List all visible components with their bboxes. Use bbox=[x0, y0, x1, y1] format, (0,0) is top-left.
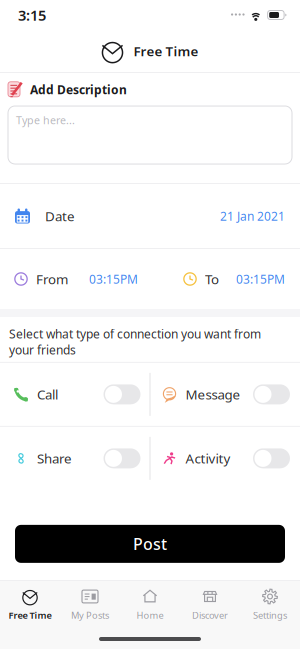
staticText: Free Time bbox=[133, 42, 198, 60]
staticText: My Posts bbox=[71, 609, 109, 621]
staticText: Date bbox=[45, 207, 75, 225]
button[interactable]: Settings bbox=[240, 588, 300, 621]
staticText: Post bbox=[133, 533, 167, 554]
button[interactable]: My Posts bbox=[60, 588, 120, 621]
staticText: To bbox=[205, 270, 219, 288]
staticText: 21 Jan 2021 bbox=[220, 208, 285, 224]
button[interactable]: Activity bbox=[150, 427, 300, 490]
staticText: Activity bbox=[185, 449, 230, 467]
button[interactable]: Call bbox=[0, 363, 149, 426]
staticText: Select what type of connection you want … bbox=[9, 326, 261, 358]
button[interactable]: Home bbox=[120, 588, 180, 621]
button[interactable]: Share bbox=[0, 427, 149, 490]
button[interactable]: From bbox=[0, 249, 150, 309]
staticText: 3:15 bbox=[18, 5, 46, 25]
button[interactable]: Date bbox=[0, 184, 300, 248]
button[interactable]: To bbox=[150, 249, 300, 309]
staticText: 03:15PM bbox=[89, 271, 138, 287]
button[interactable]: Free Time bbox=[0, 588, 60, 621]
staticText: Discover bbox=[192, 609, 228, 621]
staticText: From bbox=[36, 270, 68, 288]
staticText: 03:15PM bbox=[236, 271, 285, 287]
button[interactable]: Message bbox=[150, 363, 300, 426]
staticText: Home bbox=[136, 609, 163, 621]
staticText: Message bbox=[185, 385, 240, 403]
button[interactable]: Discover bbox=[180, 588, 240, 621]
staticText: Type here... bbox=[16, 113, 75, 127]
staticText: Share bbox=[37, 449, 72, 467]
staticText: Free Time bbox=[8, 609, 51, 621]
staticText: Settings bbox=[253, 609, 287, 621]
staticText: Add Description bbox=[30, 81, 127, 97]
button[interactable]: Post bbox=[15, 525, 285, 563]
staticText: Call bbox=[37, 385, 58, 403]
